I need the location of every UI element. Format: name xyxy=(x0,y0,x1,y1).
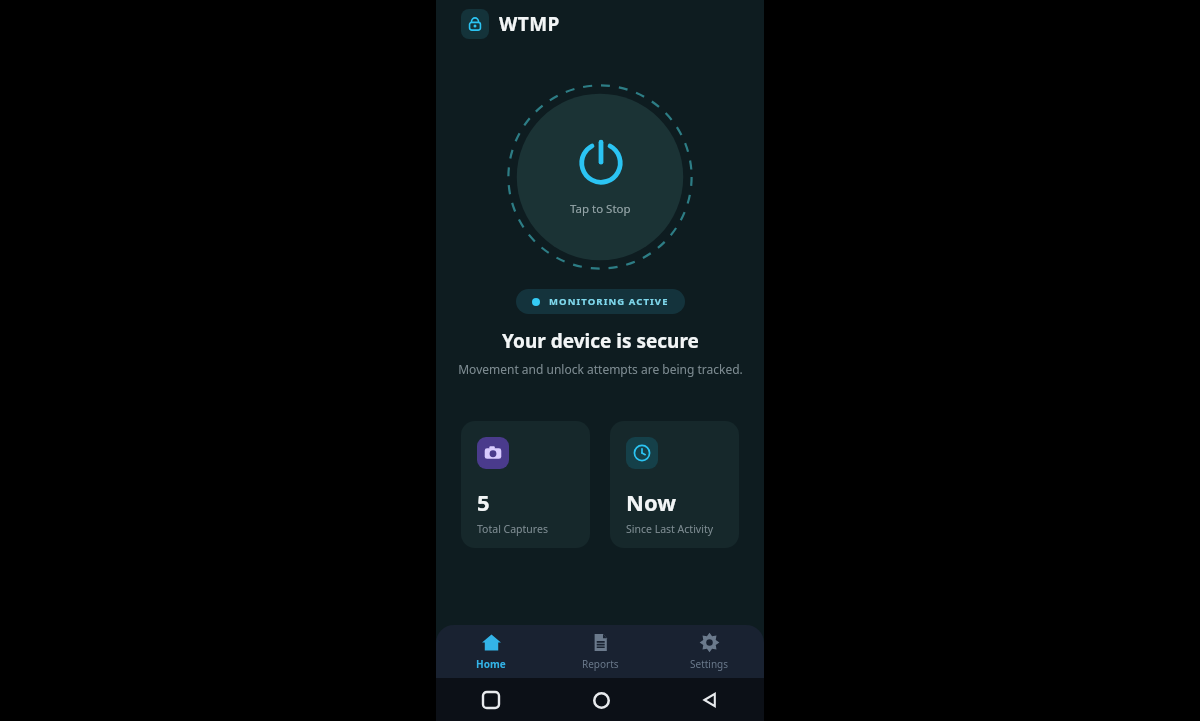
button[interactable]: Recent apps xyxy=(479,688,503,712)
button[interactable]: App logo lock xyxy=(461,9,489,39)
button[interactable]: Home xyxy=(436,625,546,678)
staticText: 5 xyxy=(477,487,490,517)
staticText: Movement and unlock attempts are being t… xyxy=(458,361,743,377)
button[interactable]: Now xyxy=(610,421,739,548)
button[interactable]: Home xyxy=(589,688,613,712)
staticText: Home xyxy=(476,657,506,671)
staticText: WTMP xyxy=(499,11,560,37)
staticText: Tap to Stop xyxy=(570,201,631,217)
staticText: MONITORING ACTIVE xyxy=(549,295,669,308)
button[interactable]: Reports xyxy=(546,625,655,678)
button[interactable]: Back xyxy=(698,688,722,712)
staticText: Settings xyxy=(690,657,729,671)
button[interactable]: 5 xyxy=(461,421,590,548)
staticText: Since Last Activity xyxy=(626,522,714,536)
button[interactable]: MONITORING ACTIVE xyxy=(516,289,685,314)
button[interactable]: Tap to Stop monitoring xyxy=(570,137,631,217)
button[interactable]: Settings xyxy=(655,625,764,678)
staticText: Reports xyxy=(582,657,619,671)
staticText: Now xyxy=(626,487,677,517)
staticText: Your device is secure xyxy=(502,328,699,354)
staticText: Total Captures xyxy=(477,522,548,536)
